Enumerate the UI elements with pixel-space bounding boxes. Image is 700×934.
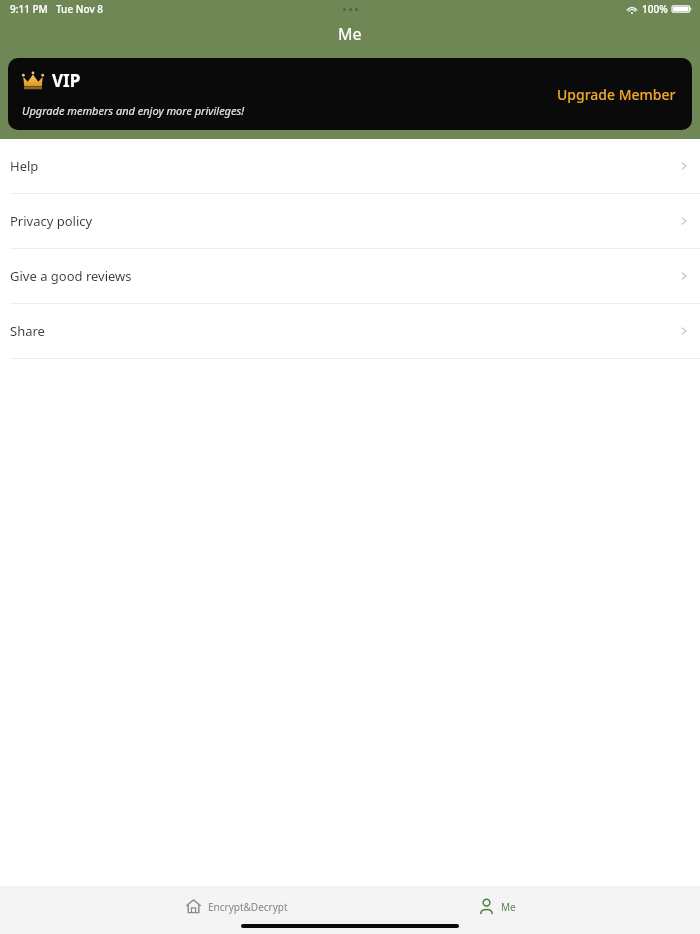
staticText: Me: [501, 900, 516, 914]
staticText: Share: [10, 322, 45, 340]
staticText: Upgrade members and enjoy more privilege…: [22, 103, 245, 118]
button[interactable]: Share: [0, 304, 700, 358]
staticText: 100%: [642, 2, 668, 16]
button[interactable]: Help: [0, 139, 700, 193]
staticText: Tue Nov 8: [56, 2, 103, 16]
other: Me: [478, 898, 495, 915]
staticText: Give a good reviews: [10, 267, 132, 285]
staticText: Me: [338, 23, 362, 45]
staticText: Encrypt&Decrypt: [208, 900, 288, 914]
staticText: VIP: [52, 69, 81, 92]
button[interactable]: Encrypt and Decrypt: [175, 895, 298, 918]
button[interactable]: Me: [468, 895, 526, 918]
button[interactable]: Give a good reviews: [0, 249, 700, 303]
button[interactable]: Upgrade Member: [541, 77, 692, 112]
button[interactable]: VIP: [8, 58, 692, 130]
staticText: Help: [10, 157, 39, 175]
other: Encrypt and Decrypt: [185, 898, 202, 915]
staticText: Upgrade Member: [557, 85, 676, 104]
staticText: Privacy policy: [10, 212, 93, 230]
button[interactable]: Privacy policy: [0, 194, 700, 248]
staticText: 9:11 PM: [10, 2, 48, 16]
